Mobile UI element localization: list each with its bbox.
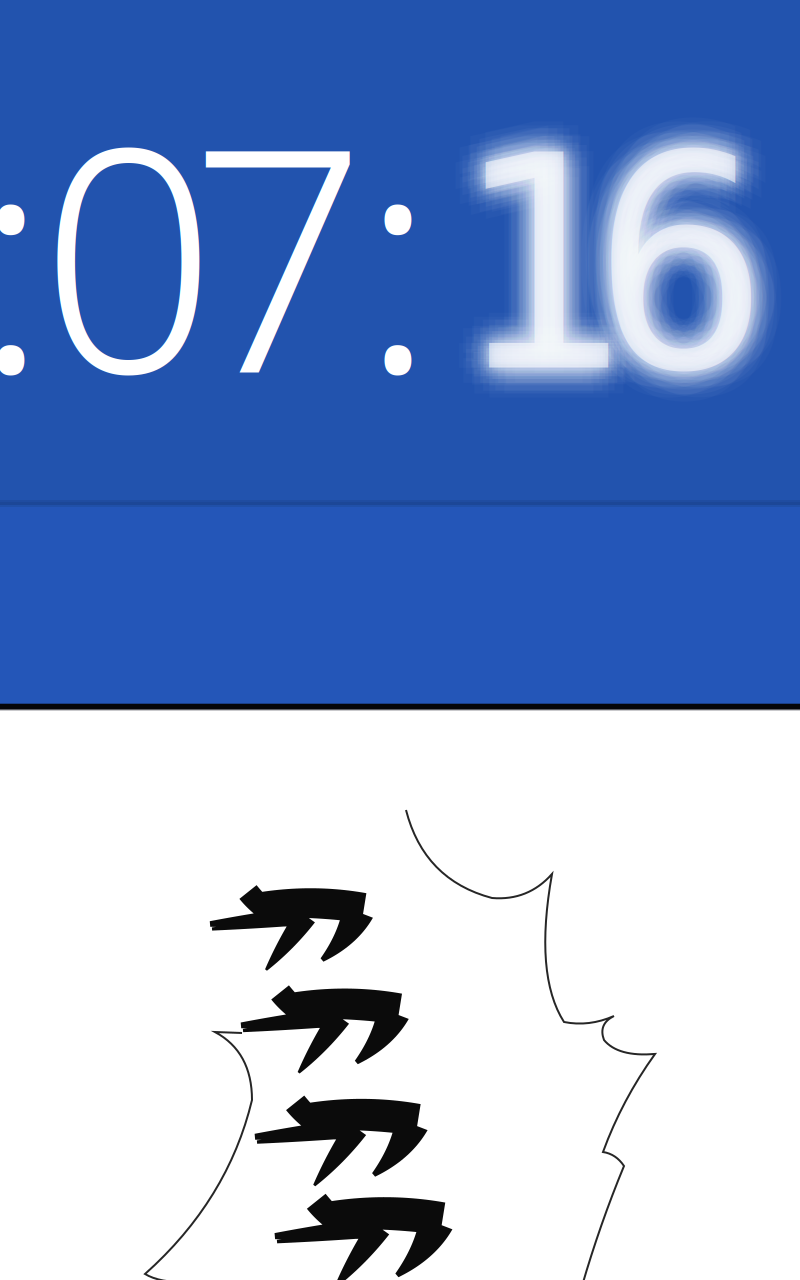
staticText: 1 xyxy=(441,113,619,448)
staticText: 6 xyxy=(589,102,767,438)
staticText: 1 xyxy=(432,97,610,433)
staticText: 1 xyxy=(434,88,612,424)
staticText: 1 xyxy=(445,100,623,436)
staticText: 6 xyxy=(587,94,765,430)
staticText: 6 xyxy=(592,127,770,463)
staticText: 1 xyxy=(438,94,616,430)
staticText: 1 xyxy=(453,92,631,428)
staticText: 1 xyxy=(444,120,622,456)
staticText: 6 xyxy=(583,113,761,448)
staticText: 1 xyxy=(458,105,636,441)
staticText: 6 xyxy=(609,114,787,450)
staticText: 1 xyxy=(465,123,643,459)
staticText: 6 xyxy=(566,112,744,448)
staticText: 6 xyxy=(592,79,770,415)
staticText: 1 xyxy=(447,102,625,438)
staticText: 6 xyxy=(608,88,786,424)
staticText: 1 xyxy=(466,88,644,424)
staticText: 1 xyxy=(456,74,634,410)
staticText: 1 xyxy=(434,106,612,442)
staticText: 6 xyxy=(595,92,773,428)
staticText: 1 xyxy=(462,94,640,430)
staticText: 1 xyxy=(447,109,625,444)
staticText: 1 xyxy=(444,74,622,410)
staticText: 1 xyxy=(466,106,644,442)
staticText: 6 xyxy=(574,97,752,433)
staticText: 6 xyxy=(597,100,775,436)
staticText: 1 xyxy=(476,82,654,418)
staticText: 6 xyxy=(562,97,740,433)
staticText: 6 xyxy=(595,85,773,421)
staticText: 1 xyxy=(424,82,602,418)
staticText: 6 xyxy=(618,112,796,448)
staticText: 1 xyxy=(480,97,658,433)
staticText: 6 xyxy=(580,94,758,430)
staticText: 6 xyxy=(604,100,782,436)
staticText: 1 xyxy=(450,127,628,463)
staticText: 6 xyxy=(598,97,776,433)
staticText: : xyxy=(360,47,435,458)
staticText: 6 xyxy=(577,123,755,459)
staticText: 1 xyxy=(453,85,631,421)
staticText: 6 xyxy=(566,82,744,418)
staticText: 6 xyxy=(595,102,773,438)
staticText: 6 xyxy=(569,103,747,439)
staticText: 6 xyxy=(598,74,776,410)
staticText: 1 xyxy=(447,92,625,428)
staticText: 1 xyxy=(456,120,634,456)
staticText: 1 xyxy=(427,91,605,427)
staticText: 6 xyxy=(583,81,761,417)
staticText: 6 xyxy=(589,85,767,421)
staticText: 6 xyxy=(576,88,754,424)
staticText: 1 xyxy=(450,79,628,415)
staticText: 6 xyxy=(618,82,796,418)
staticText: 6 xyxy=(580,100,758,436)
staticText: 6 xyxy=(575,114,753,450)
staticText: 6 xyxy=(586,120,764,456)
staticText: 1 xyxy=(455,94,633,430)
staticText: 1 xyxy=(473,103,651,439)
staticText: 1 xyxy=(465,71,643,407)
staticText: 6 xyxy=(600,105,778,441)
staticText: 6 xyxy=(595,109,773,444)
staticText: 1 xyxy=(435,123,613,459)
staticText: 1 xyxy=(467,80,645,416)
staticText: 6 xyxy=(597,94,775,430)
staticText: 6 xyxy=(592,91,770,427)
staticText: 6 xyxy=(608,106,786,442)
staticText: 1 xyxy=(441,81,619,417)
staticText: 1 xyxy=(456,97,634,433)
staticText: 6 xyxy=(592,97,770,433)
staticText: 1 xyxy=(450,67,628,403)
staticText: 6 xyxy=(583,88,761,424)
staticText: 6 xyxy=(622,97,800,433)
staticText: 6 xyxy=(586,97,764,433)
staticText: 6 xyxy=(607,71,785,407)
staticText: 7 xyxy=(190,47,367,458)
staticText: 1 xyxy=(467,114,645,450)
staticText: 1 xyxy=(441,105,619,441)
staticText: 1 xyxy=(453,109,631,444)
staticText: 1 xyxy=(433,80,611,416)
staticText: 1 xyxy=(450,97,628,433)
staticText: 6 xyxy=(604,94,782,430)
staticText: 6 xyxy=(607,123,785,459)
staticText: 0 xyxy=(40,47,217,458)
staticText: 1 xyxy=(438,100,616,436)
staticText: 1 xyxy=(450,91,628,427)
staticText: 1 xyxy=(444,97,622,433)
staticText: 1 xyxy=(459,81,637,417)
staticText: 6 xyxy=(575,80,753,416)
staticText: 6 xyxy=(592,67,770,403)
staticText: 1 xyxy=(473,91,651,427)
staticText: 1 xyxy=(450,103,628,439)
staticText: 6 xyxy=(600,88,778,424)
staticText: 6 xyxy=(601,81,779,417)
staticText: 1 xyxy=(450,115,628,451)
staticText: 6 xyxy=(610,97,788,433)
staticText: 6 xyxy=(589,109,767,444)
staticText: 6 xyxy=(583,105,761,441)
staticText: 1 xyxy=(453,102,631,438)
staticText: 6 xyxy=(592,115,770,451)
staticText: 1 xyxy=(462,100,640,436)
